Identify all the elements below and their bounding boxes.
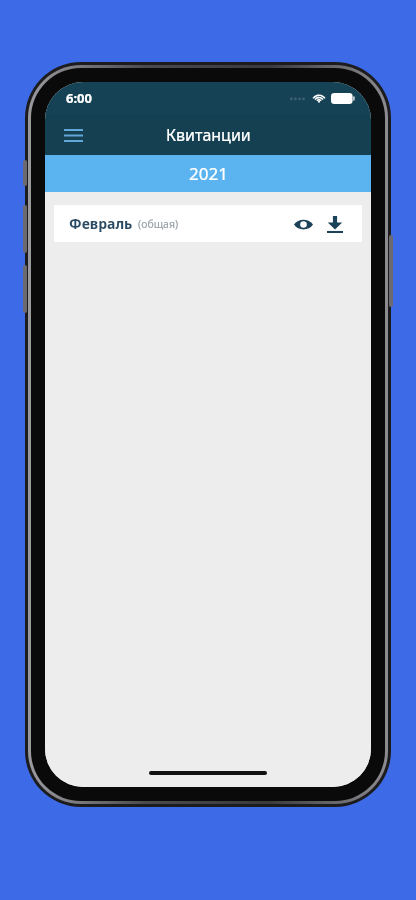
button[interactable]: Download receipt [320,209,350,239]
staticText: Квитанции [166,124,251,146]
staticText: (общая) [138,217,179,231]
button[interactable]: View receipt [288,209,318,239]
staticText: 2021 [189,162,228,185]
button[interactable]: 2021 [45,155,371,192]
button[interactable]: Open navigation menu [53,115,93,155]
staticText: Февраль [69,214,133,233]
staticText: 6:00 [66,89,92,107]
button[interactable]: Февраль [54,205,362,242]
